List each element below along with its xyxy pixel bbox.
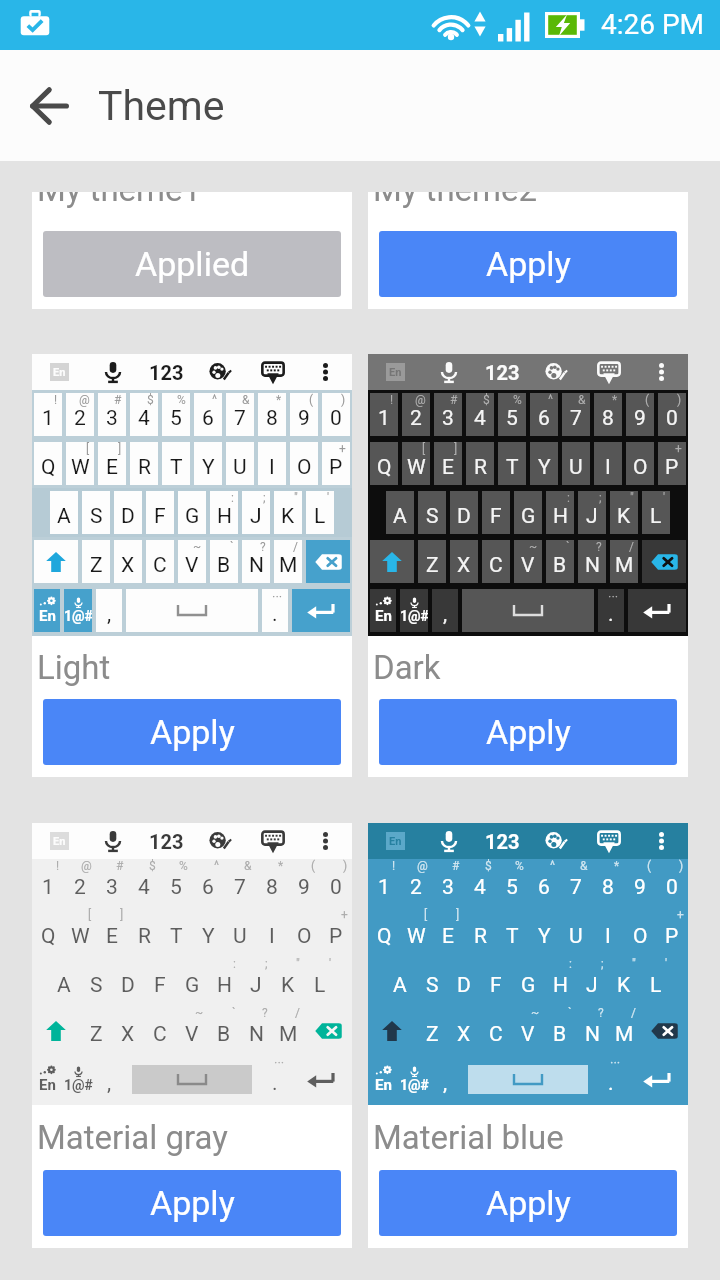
staticText: P	[329, 924, 343, 949]
staticText: A	[393, 973, 407, 998]
staticText: W	[407, 455, 426, 480]
staticText: U	[233, 455, 247, 480]
staticText: U	[233, 924, 247, 949]
staticText: O	[297, 924, 312, 949]
staticText: .	[608, 1071, 614, 1096]
staticText: ]	[454, 442, 458, 456]
staticText: ,	[107, 1071, 112, 1096]
staticText: V	[521, 1022, 535, 1047]
staticText: K	[617, 504, 631, 529]
staticText: Apply	[486, 712, 571, 752]
button[interactable]: Navigate up	[16, 73, 82, 139]
staticText: 5	[506, 406, 518, 431]
staticText: ?	[598, 1006, 604, 1020]
staticText: En	[39, 1076, 56, 1094]
staticText: 8	[266, 406, 278, 431]
staticText: J	[250, 973, 262, 998]
staticText: 1@#	[400, 608, 428, 624]
staticText: W	[71, 455, 90, 480]
button[interactable]: En	[32, 354, 352, 777]
staticText: I	[269, 924, 275, 949]
staticText: 5	[170, 406, 182, 431]
staticText: "	[294, 491, 298, 505]
staticText: 0	[330, 875, 342, 900]
staticText: '	[663, 491, 666, 505]
staticText: :	[569, 957, 572, 971]
staticText: 7	[570, 406, 582, 431]
staticText: Z	[426, 1022, 439, 1047]
staticText: [	[424, 908, 428, 922]
staticText: 9	[634, 406, 646, 431]
button[interactable]: My theme2	[368, 192, 688, 309]
staticText: Y	[202, 924, 215, 949]
staticText: Light	[37, 648, 111, 687]
staticText: ?	[262, 1006, 268, 1020]
staticText: Q	[41, 924, 56, 949]
staticText: G	[185, 973, 200, 998]
button[interactable]: En	[368, 354, 688, 777]
staticText: /	[631, 1006, 636, 1020]
staticText: L	[650, 504, 662, 529]
staticText: En	[389, 366, 402, 379]
staticText: En	[53, 835, 66, 848]
staticText: C	[153, 1022, 167, 1047]
staticText: $	[483, 393, 490, 407]
staticText: [	[86, 442, 90, 456]
staticText: V	[521, 553, 535, 578]
staticText: @	[79, 393, 90, 407]
staticText: )	[679, 859, 684, 873]
staticText: .	[272, 1071, 278, 1096]
staticText: 1@#	[64, 1077, 93, 1093]
staticText: &	[242, 393, 250, 407]
button[interactable]: En	[368, 823, 688, 1248]
button[interactable]: En	[32, 823, 352, 1248]
staticText: U	[569, 455, 583, 480]
staticText: 123	[485, 361, 520, 384]
staticText: )	[677, 393, 682, 407]
staticText: 0	[666, 406, 678, 431]
staticText: :	[567, 491, 570, 505]
staticText: S	[426, 504, 439, 529]
staticText: )	[341, 393, 346, 407]
staticText: 2	[74, 406, 86, 431]
staticText: L	[650, 973, 662, 998]
staticText: 123	[485, 830, 520, 853]
button[interactable]: Apply	[379, 1170, 677, 1236]
staticText: L	[314, 504, 326, 529]
staticText: R	[138, 924, 151, 949]
staticText: ^	[548, 393, 554, 407]
button[interactable]: Apply	[43, 1170, 341, 1236]
button[interactable]: Apply	[379, 699, 677, 765]
staticText: !	[56, 859, 60, 873]
staticText: ···	[274, 1055, 285, 1070]
staticText: )	[343, 859, 348, 873]
staticText: My theme2	[373, 192, 538, 209]
button[interactable]: Applied	[43, 231, 341, 297]
button[interactable]: My theme1	[32, 192, 352, 309]
staticText: $	[147, 393, 154, 407]
staticText: N	[585, 553, 600, 578]
staticText: S	[426, 973, 439, 998]
staticText: Applied	[135, 244, 250, 284]
staticText: 8	[602, 406, 614, 431]
staticText: F	[490, 504, 502, 529]
staticText: 2	[410, 406, 422, 431]
staticText: G	[185, 504, 200, 529]
staticText: D	[457, 973, 471, 998]
staticText: &	[580, 859, 588, 873]
button[interactable]: Apply	[43, 699, 341, 765]
staticText: .	[272, 602, 278, 627]
staticText: S	[90, 973, 103, 998]
staticText: !	[390, 393, 394, 407]
staticText: R	[474, 455, 487, 480]
staticText: L	[314, 973, 326, 998]
button[interactable]: Apply	[379, 231, 677, 297]
staticText: +	[675, 442, 682, 456]
staticText: ;	[599, 491, 602, 505]
staticText: T	[170, 924, 183, 949]
staticText: R	[138, 455, 151, 480]
staticText: P	[665, 455, 679, 480]
staticText: En	[375, 1076, 392, 1094]
staticText: O	[633, 924, 648, 949]
staticText: N	[249, 1022, 264, 1047]
